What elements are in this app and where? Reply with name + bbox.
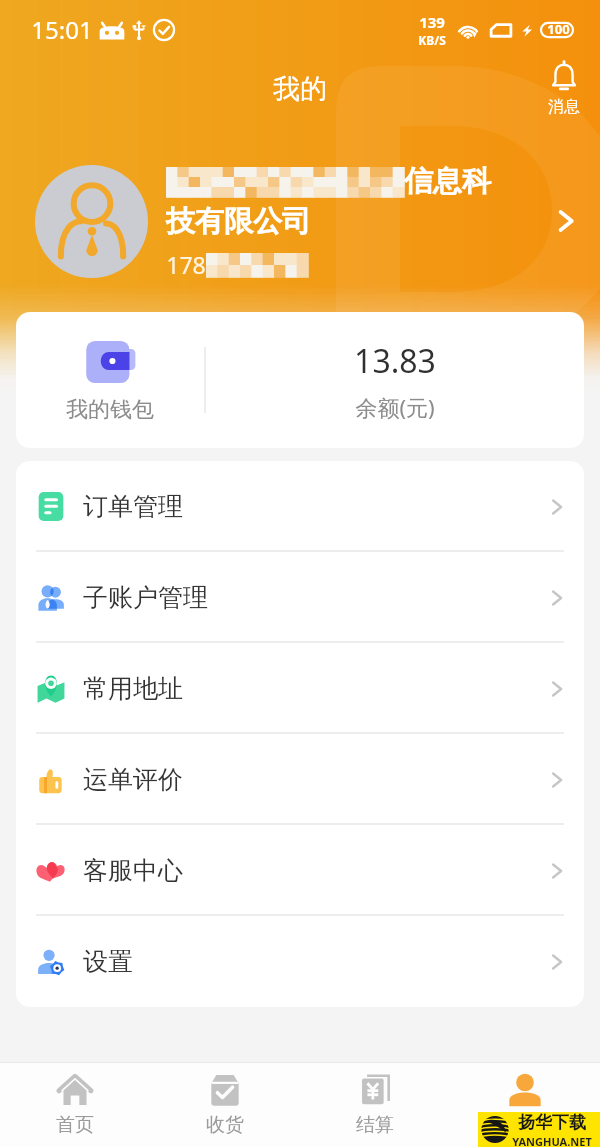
staticText: 消息 bbox=[548, 97, 580, 117]
staticText: 运单评价 bbox=[83, 764, 183, 795]
button[interactable]: 我的 bbox=[450, 1063, 600, 1147]
button[interactable]: 订单管理 bbox=[16, 461, 584, 552]
button[interactable]: 首页 bbox=[0, 1063, 150, 1147]
staticText: 子账户管理 bbox=[83, 582, 208, 613]
staticText: 设置 bbox=[83, 946, 133, 977]
staticText: 信息科 bbox=[404, 163, 491, 200]
button[interactable]: 子账户管理 bbox=[16, 552, 584, 643]
staticText: 178 bbox=[166, 249, 206, 280]
staticText: KB/S bbox=[418, 32, 446, 48]
staticText: 余额(元) bbox=[355, 392, 435, 422]
staticText: 13.83 bbox=[354, 339, 436, 383]
button[interactable]: 信息科 bbox=[0, 155, 600, 287]
staticText: 我的钱包 bbox=[66, 396, 154, 424]
staticText: 139 bbox=[419, 12, 445, 32]
button[interactable]: 设置 bbox=[16, 916, 584, 1007]
button[interactable]: 结算 bbox=[300, 1063, 450, 1147]
staticText: 技有限公司 bbox=[166, 203, 311, 240]
other: 个人资料 bbox=[548, 203, 584, 239]
staticText: 客服中心 bbox=[83, 855, 183, 886]
button[interactable]: 运单评价 bbox=[16, 734, 584, 825]
staticText: 我的 bbox=[506, 1113, 544, 1137]
staticText: YANGHUA.NET bbox=[512, 1134, 592, 1147]
button[interactable]: 常用地址 bbox=[16, 643, 584, 734]
staticText: 100 bbox=[547, 20, 570, 38]
staticText: 首页 bbox=[56, 1113, 94, 1137]
staticText: 扬华下载 bbox=[518, 1112, 586, 1133]
staticText: 15:01 bbox=[31, 13, 93, 46]
staticText: 我的 bbox=[273, 72, 327, 106]
staticText: 常用地址 bbox=[83, 673, 183, 704]
button[interactable]: 客服中心 bbox=[16, 825, 584, 916]
staticText: 结算 bbox=[356, 1113, 394, 1137]
button[interactable]: 我的钱包 bbox=[16, 312, 584, 448]
button[interactable]: 收货 bbox=[150, 1063, 300, 1147]
staticText: 收货 bbox=[206, 1113, 244, 1137]
button[interactable]: 消息 bbox=[540, 62, 588, 117]
staticText: 订单管理 bbox=[83, 491, 183, 522]
